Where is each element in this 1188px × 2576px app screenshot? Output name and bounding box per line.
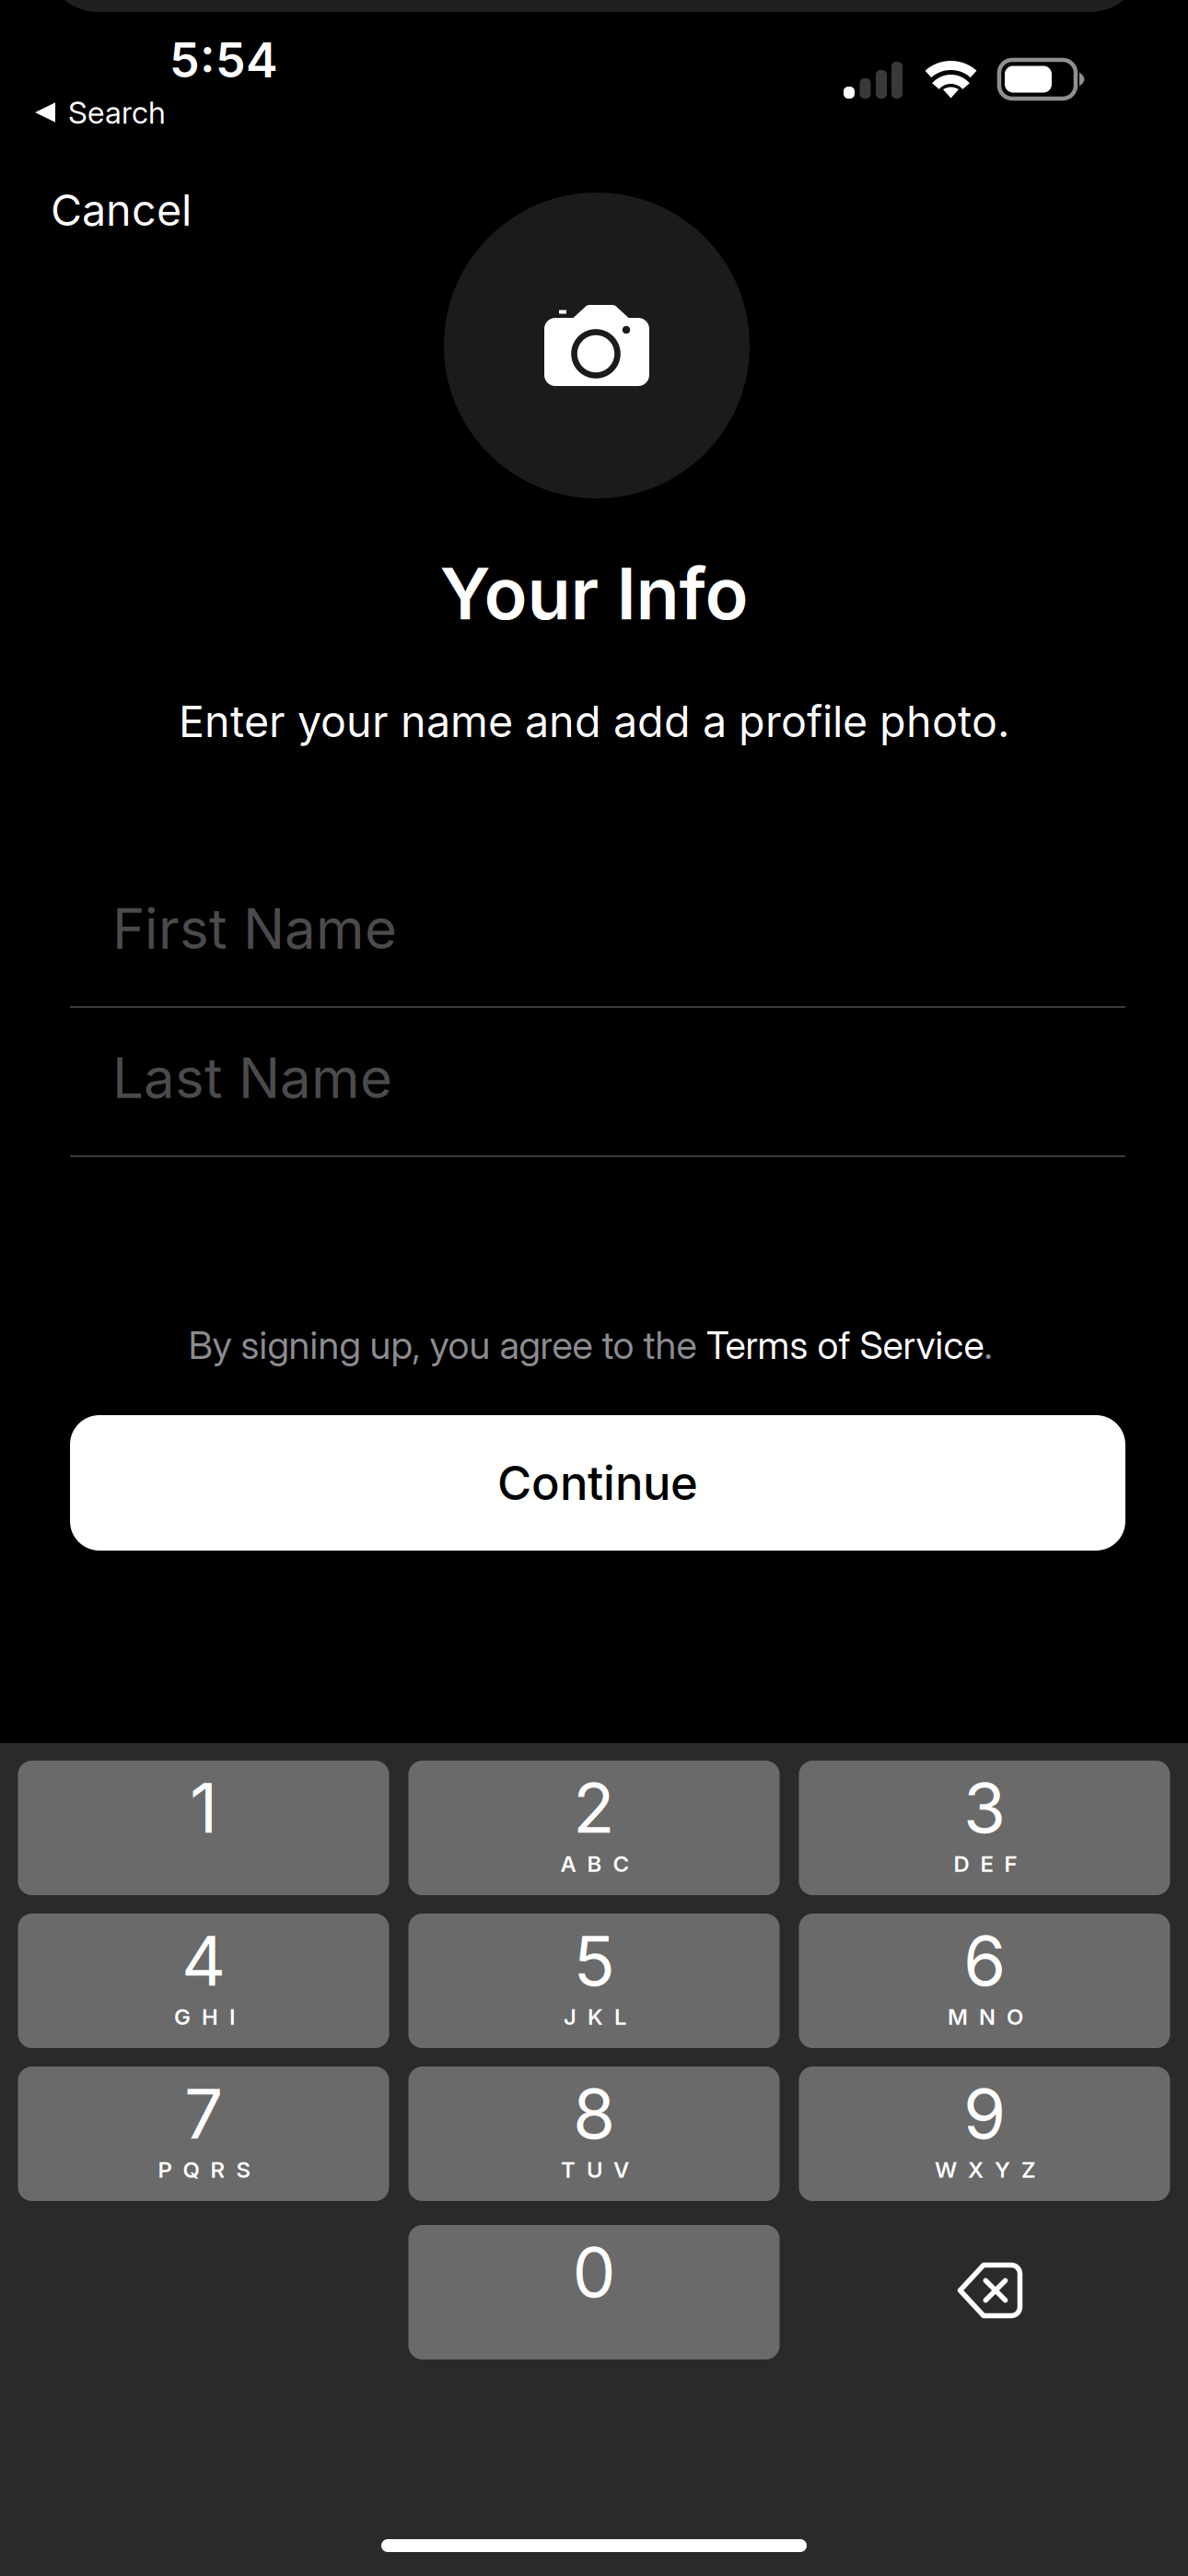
- staticText: 1: [190, 1766, 217, 1849]
- staticText: PQRS: [158, 2156, 251, 2183]
- staticText: Continue: [497, 1455, 698, 1511]
- button[interactable]: Cancel: [51, 171, 235, 249]
- staticText: 6: [963, 1919, 1006, 2002]
- button[interactable]: Search: [35, 87, 238, 138]
- staticText: JKL: [564, 2003, 626, 2030]
- staticText: Last Name: [112, 1044, 392, 1111]
- button[interactable]: 5: [408, 1914, 780, 2048]
- staticText: First Name: [112, 895, 397, 962]
- staticText: 2: [573, 1766, 615, 1849]
- staticText: MNO: [948, 2003, 1023, 2030]
- button[interactable]: First Name: [70, 854, 1125, 1003]
- button[interactable]: 7: [18, 2067, 389, 2201]
- staticText: By signing up, you agree to the: [188, 1322, 706, 1368]
- staticText: 0: [572, 2230, 616, 2314]
- button[interactable]: Last Name: [70, 1003, 1125, 1153]
- staticText: GHI: [174, 2003, 235, 2030]
- staticText: Your Info: [440, 550, 748, 636]
- staticText: DEF: [954, 1850, 1017, 1877]
- button[interactable]: 6: [799, 1914, 1170, 2048]
- staticText: TUV: [561, 2156, 629, 2183]
- button[interactable]: Continue: [70, 1415, 1125, 1551]
- staticText: 5:54: [169, 31, 278, 89]
- staticText: WXYZ: [935, 2156, 1036, 2183]
- staticText: Terms of Service: [706, 1322, 984, 1368]
- button[interactable]: 4: [18, 1914, 389, 2048]
- button[interactable]: 1: [18, 1761, 389, 1895]
- staticText: 9: [963, 2072, 1006, 2155]
- button[interactable]: Add profile photo: [444, 193, 750, 498]
- staticText: 4: [181, 1919, 226, 2002]
- staticText: ABC: [560, 1850, 629, 1877]
- staticText: Enter your name and add a profile photo.: [179, 695, 1009, 747]
- button[interactable]: Delete: [804, 2223, 1175, 2358]
- button[interactable]: 3: [799, 1761, 1170, 1895]
- button[interactable]: 9: [799, 2067, 1170, 2201]
- staticText: 8: [573, 2072, 615, 2155]
- staticText: Search: [68, 94, 166, 131]
- staticText: 7: [184, 2072, 223, 2155]
- button[interactable]: 2: [408, 1761, 780, 1895]
- button[interactable]: 0: [408, 2225, 780, 2359]
- button[interactable]: 8: [408, 2067, 780, 2201]
- staticText: .: [984, 1322, 992, 1368]
- button[interactable]: Terms of Service: [706, 1322, 984, 1368]
- staticText: Cancel: [51, 184, 192, 236]
- staticText: 3: [963, 1766, 1006, 1849]
- staticText: 5: [573, 1919, 615, 2002]
